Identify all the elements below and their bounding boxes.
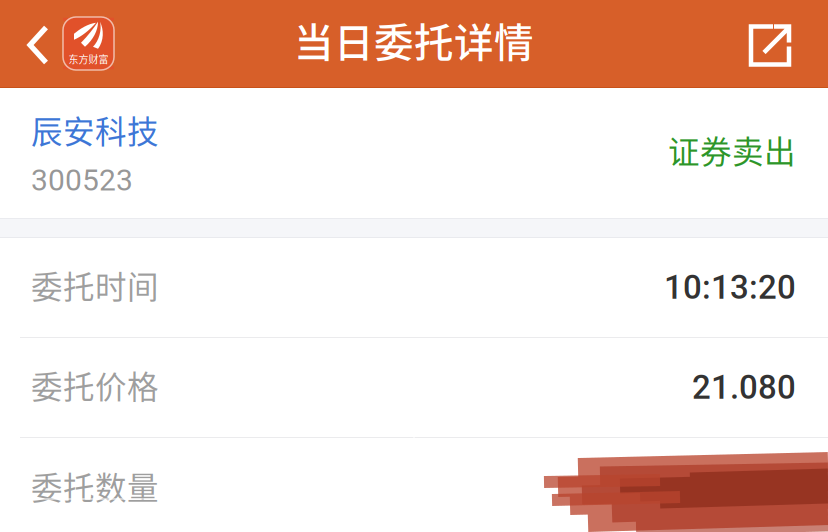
staticText: 委托价格 <box>31 362 159 408</box>
staticText: 委托时间 <box>31 262 159 308</box>
staticText: 300523 <box>31 163 133 198</box>
button[interactable]: East Money home <box>63 0 114 87</box>
staticText: 21.080 <box>692 368 796 407</box>
staticText: 东方财富 <box>68 52 108 66</box>
button[interactable]: 委托价格 <box>0 338 828 437</box>
staticText: 当日委托详情 <box>294 11 534 69</box>
button[interactable]: 辰安科技 <box>31 107 159 153</box>
staticText: 辰安科技 <box>31 107 159 153</box>
button[interactable]: Share <box>749 0 828 87</box>
button[interactable]: 委托数量 <box>0 438 828 532</box>
button[interactable]: Back <box>0 0 63 87</box>
button[interactable]: 委托时间 <box>0 238 828 337</box>
staticText: 委托数量 <box>31 463 159 509</box>
staticText: 10:13:20 <box>664 268 796 307</box>
staticText: 证券卖出 <box>668 127 796 173</box>
